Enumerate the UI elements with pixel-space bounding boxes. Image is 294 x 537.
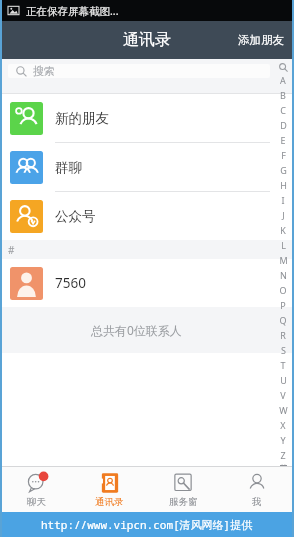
staticText: T [280,359,286,371]
staticText: K [280,224,286,236]
staticText: 总共有0位联系人 [91,322,182,338]
staticText: Y [280,434,286,446]
button[interactable]: 通讯录 [73,467,146,512]
button[interactable]: 我 [220,467,294,512]
button[interactable]: 7560 [0,259,294,307]
staticText: 搜索 [33,64,55,78]
button[interactable]: 搜索 [8,64,270,78]
staticText: 服务窗 [169,496,198,508]
staticText: F [281,149,286,161]
staticText: 我 [252,496,262,508]
button[interactable]: 新的朋友 [0,94,294,142]
staticText: 添加朋友 [238,33,284,47]
staticText: X [280,419,286,431]
staticText: R [280,329,286,341]
staticText: P [280,299,286,311]
staticText: Q [279,314,287,326]
staticText: H [280,179,287,191]
staticText: 聊天 [27,496,46,508]
staticText: W [279,404,288,416]
button[interactable]: 群聊 [0,143,294,191]
staticText: N [280,269,287,281]
staticText: 通讯录 [123,30,171,50]
staticText: 7560 [55,274,86,292]
button[interactable]: 聊天 [0,467,73,512]
staticText: L [281,239,286,251]
staticText: I [281,194,285,206]
button[interactable]: Alphabet index [272,59,294,466]
staticText: 正在保存屏幕截图... [26,4,119,18]
staticText: U [280,374,287,386]
staticText: V [280,389,286,401]
staticText: Z [280,449,286,461]
staticText: 群聊 [55,159,82,176]
staticText: J [282,209,285,221]
staticText: G [280,164,287,176]
staticText: C [280,104,286,116]
staticText: D [280,119,287,131]
staticText: 通讯录 [95,496,124,508]
staticText: O [279,284,287,296]
button[interactable]: 公众号 [0,192,294,240]
button[interactable]: 添加朋友 [228,25,294,55]
staticText: 公众号 [55,208,96,225]
staticText: E [280,134,286,146]
staticText: B [280,89,286,101]
staticText: S [281,344,286,356]
staticText: A [280,74,286,86]
staticText: 新的朋友 [55,110,109,127]
button[interactable]: 服务窗 [146,467,220,512]
staticText: http://www.vipcn.com[清风网络]提供 [41,517,253,532]
staticText: M [279,254,288,266]
staticText: # [8,243,15,257]
